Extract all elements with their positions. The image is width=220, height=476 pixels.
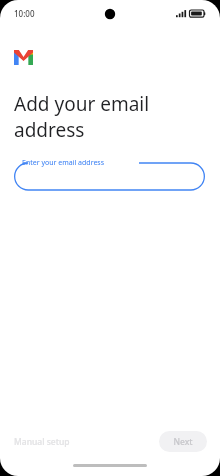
staticText: Manual setup bbox=[14, 436, 70, 448]
button[interactable]: Next bbox=[159, 431, 207, 452]
staticText: 10:00 bbox=[14, 8, 35, 19]
staticText: Enter your email address bbox=[22, 158, 105, 168]
button[interactable]: Enter your email address bbox=[14, 156, 205, 196]
button[interactable]: Manual setup bbox=[6, 431, 78, 453]
staticText: Next bbox=[173, 436, 193, 448]
staticText: Add your email address bbox=[14, 91, 150, 142]
